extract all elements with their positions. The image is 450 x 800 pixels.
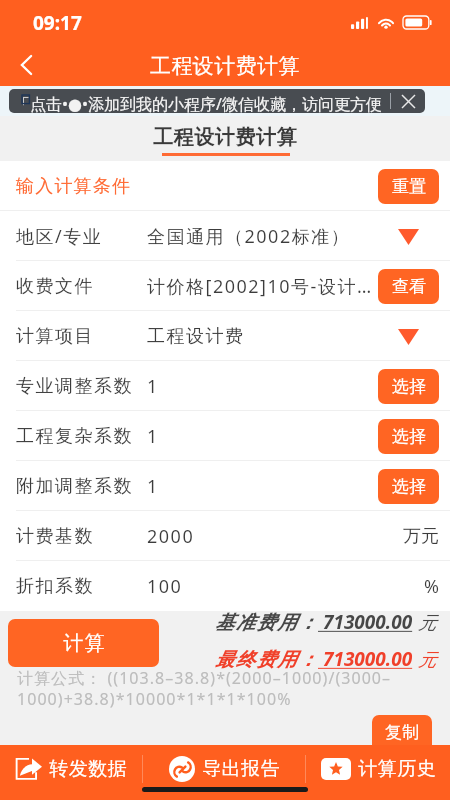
staticText: 计算历史 [358, 757, 436, 781]
staticText: 选择 [392, 476, 426, 497]
staticText: 09:17 [33, 10, 82, 36]
staticText: 选择 [392, 376, 426, 397]
staticText: 工程设计费计算 [150, 53, 300, 79]
staticText: 元 [418, 612, 436, 635]
button[interactable]: Close banner [391, 89, 425, 113]
staticText: 713000.00 [318, 646, 418, 672]
staticText: 计算 [63, 631, 105, 656]
button[interactable]: 查看 [378, 269, 439, 304]
staticText: 工程设计费 [147, 325, 378, 348]
button[interactable]: 计算历史 [306, 745, 450, 792]
staticText: 万元 [403, 525, 439, 548]
staticText: 「点击•●•添加到我的小程序/微信收藏，访问更方便 [14, 93, 382, 113]
staticText: 工程设计费计算 [153, 125, 298, 150]
button[interactable]: 收费文件 [0, 261, 450, 311]
staticText: 选择 [392, 426, 426, 447]
button[interactable]: 选择 [378, 419, 439, 454]
staticText: 元 [418, 649, 436, 672]
staticText: 2000 [147, 524, 378, 549]
staticText: 专业调整系数 [16, 375, 147, 398]
button[interactable]: 转发数据 [0, 745, 142, 792]
button[interactable]: Back [0, 43, 52, 86]
button[interactable]: 工程复杂系数 [0, 411, 450, 461]
button[interactable]: 折扣系数 [0, 561, 450, 611]
staticText: 附加调整系数 [16, 475, 147, 498]
staticText: 1 [147, 374, 378, 399]
button[interactable]: Expand [378, 319, 439, 354]
staticText: 工程复杂系数 [16, 425, 147, 448]
staticText: 计算公式： ((103.8–38.8)*(2000–1000)/(3000– 1… [17, 667, 392, 709]
staticText: 最终费用： [214, 648, 318, 672]
button[interactable]: 导出报告 [143, 745, 305, 792]
button[interactable]: 地区/专业 [0, 211, 450, 261]
staticText: 100 [147, 574, 378, 599]
button[interactable]: 附加调整系数 [0, 461, 450, 511]
button[interactable]: 专业调整系数 [0, 361, 450, 411]
staticText: 计算项目 [16, 325, 147, 348]
staticText: 计价格[2002]10号-设计… [147, 274, 378, 299]
button[interactable]: 计费基数 [0, 511, 450, 561]
staticText: 713000.00 [318, 609, 418, 635]
staticText: 基准费用： [214, 611, 318, 635]
button[interactable]: 选择 [378, 369, 439, 404]
staticText: % [424, 574, 439, 599]
staticText: 转发数据 [49, 757, 127, 781]
staticText: 查看 [392, 276, 426, 297]
staticText: 输入计算条件 [16, 175, 132, 198]
staticText: 全国通用（2002标准） [147, 224, 378, 249]
button[interactable]: 复制 [372, 715, 432, 750]
staticText: 计费基数 [16, 525, 147, 548]
staticText: 收费文件 [16, 275, 147, 298]
staticText: 折扣系数 [16, 575, 147, 598]
staticText: 1 [147, 424, 378, 449]
button[interactable]: 计算 [8, 619, 159, 667]
staticText: 复制 [385, 722, 419, 743]
staticText: 地区/专业 [16, 224, 147, 249]
button[interactable]: 选择 [378, 469, 439, 504]
staticText: 1 [147, 474, 378, 499]
button[interactable]: 计算项目 [0, 311, 450, 361]
staticText: 重置 [392, 176, 426, 197]
button[interactable]: 重置 [378, 169, 439, 204]
staticText: 导出报告 [202, 757, 280, 781]
button[interactable]: Expand [378, 219, 439, 254]
